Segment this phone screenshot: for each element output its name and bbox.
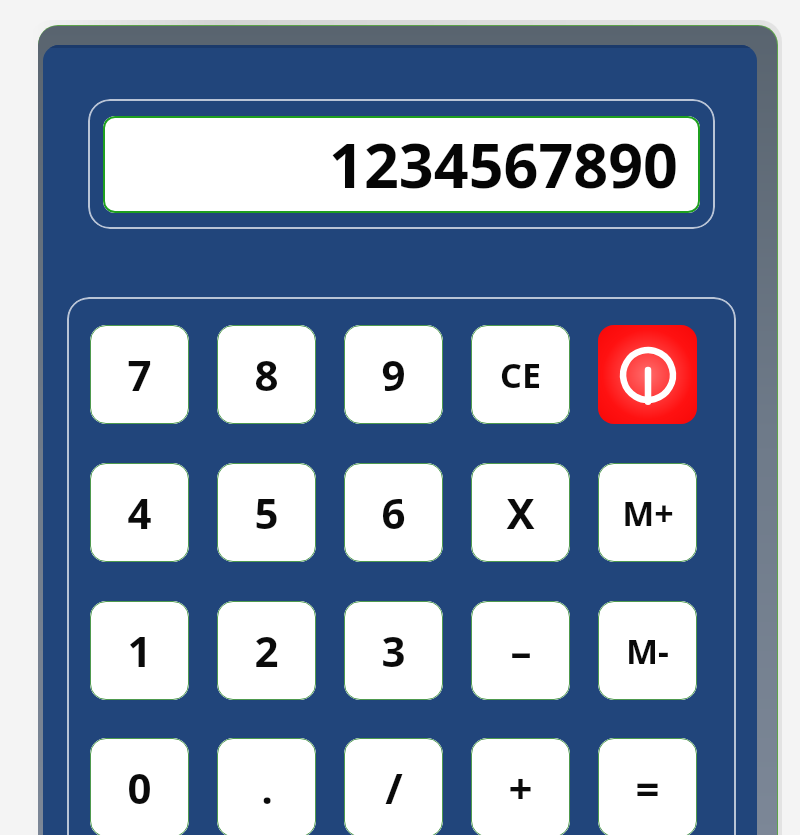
- button[interactable]: .: [217, 738, 316, 835]
- button[interactable]: X: [471, 463, 570, 562]
- staticText: –: [510, 622, 532, 679]
- button[interactable]: 2: [217, 601, 316, 700]
- button[interactable]: /: [344, 738, 443, 835]
- staticText: M-: [626, 628, 669, 674]
- staticText: M+: [622, 490, 674, 536]
- button[interactable]: 1: [90, 601, 189, 700]
- staticText: +: [508, 759, 533, 816]
- button[interactable]: 0: [90, 738, 189, 835]
- button[interactable]: Power: [598, 325, 697, 424]
- staticText: 1234567890: [329, 123, 678, 206]
- button[interactable]: 6: [344, 463, 443, 562]
- staticText: .: [261, 761, 273, 815]
- staticText: 5: [254, 484, 279, 541]
- button[interactable]: 3: [344, 601, 443, 700]
- button[interactable]: M-: [598, 601, 697, 700]
- button[interactable]: 8: [217, 325, 316, 424]
- button[interactable]: 1234567890: [103, 116, 700, 213]
- button[interactable]: +: [471, 738, 570, 835]
- staticText: /: [385, 759, 403, 816]
- staticText: 3: [381, 622, 406, 679]
- staticText: =: [635, 759, 660, 816]
- button[interactable]: CE: [471, 325, 570, 424]
- staticText: 4: [127, 484, 152, 541]
- staticText: 9: [381, 346, 406, 403]
- staticText: 0: [127, 759, 152, 816]
- staticText: X: [506, 484, 535, 541]
- staticText: 8: [254, 346, 279, 403]
- staticText: 2: [254, 622, 279, 679]
- staticText: CE: [500, 352, 541, 398]
- staticText: 1: [127, 622, 152, 679]
- staticText: 7: [127, 346, 152, 403]
- button[interactable]: 4: [90, 463, 189, 562]
- staticText: 6: [381, 484, 406, 541]
- button[interactable]: =: [598, 738, 697, 835]
- button[interactable]: 9: [344, 325, 443, 424]
- button[interactable]: 7: [90, 325, 189, 424]
- button[interactable]: –: [471, 601, 570, 700]
- button[interactable]: M+: [598, 463, 697, 562]
- button[interactable]: 5: [217, 463, 316, 562]
